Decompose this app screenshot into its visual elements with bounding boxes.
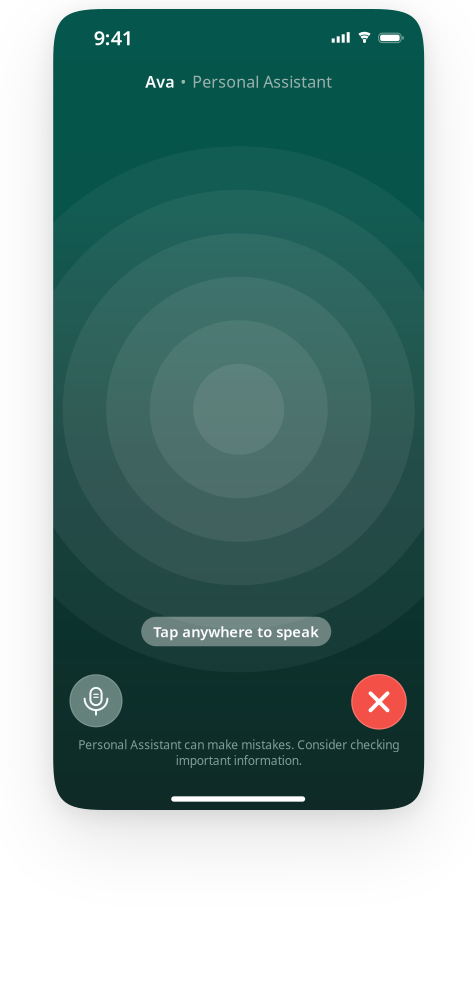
staticText: Ava xyxy=(145,71,174,92)
staticText: Tap anywhere to speak xyxy=(153,622,319,641)
staticText: important information. xyxy=(176,752,302,768)
button[interactable]: Close xyxy=(351,674,407,729)
staticText: • xyxy=(180,71,186,92)
button[interactable]: Microphone xyxy=(69,674,122,727)
staticText: 9:41 xyxy=(94,24,133,51)
button[interactable]: Ava xyxy=(145,71,332,92)
staticText: Personal Assistant can make mistakes. Co… xyxy=(78,737,399,752)
staticText: Personal Assistant xyxy=(192,71,332,92)
button[interactable]: Tap anywhere to speak xyxy=(141,617,331,646)
